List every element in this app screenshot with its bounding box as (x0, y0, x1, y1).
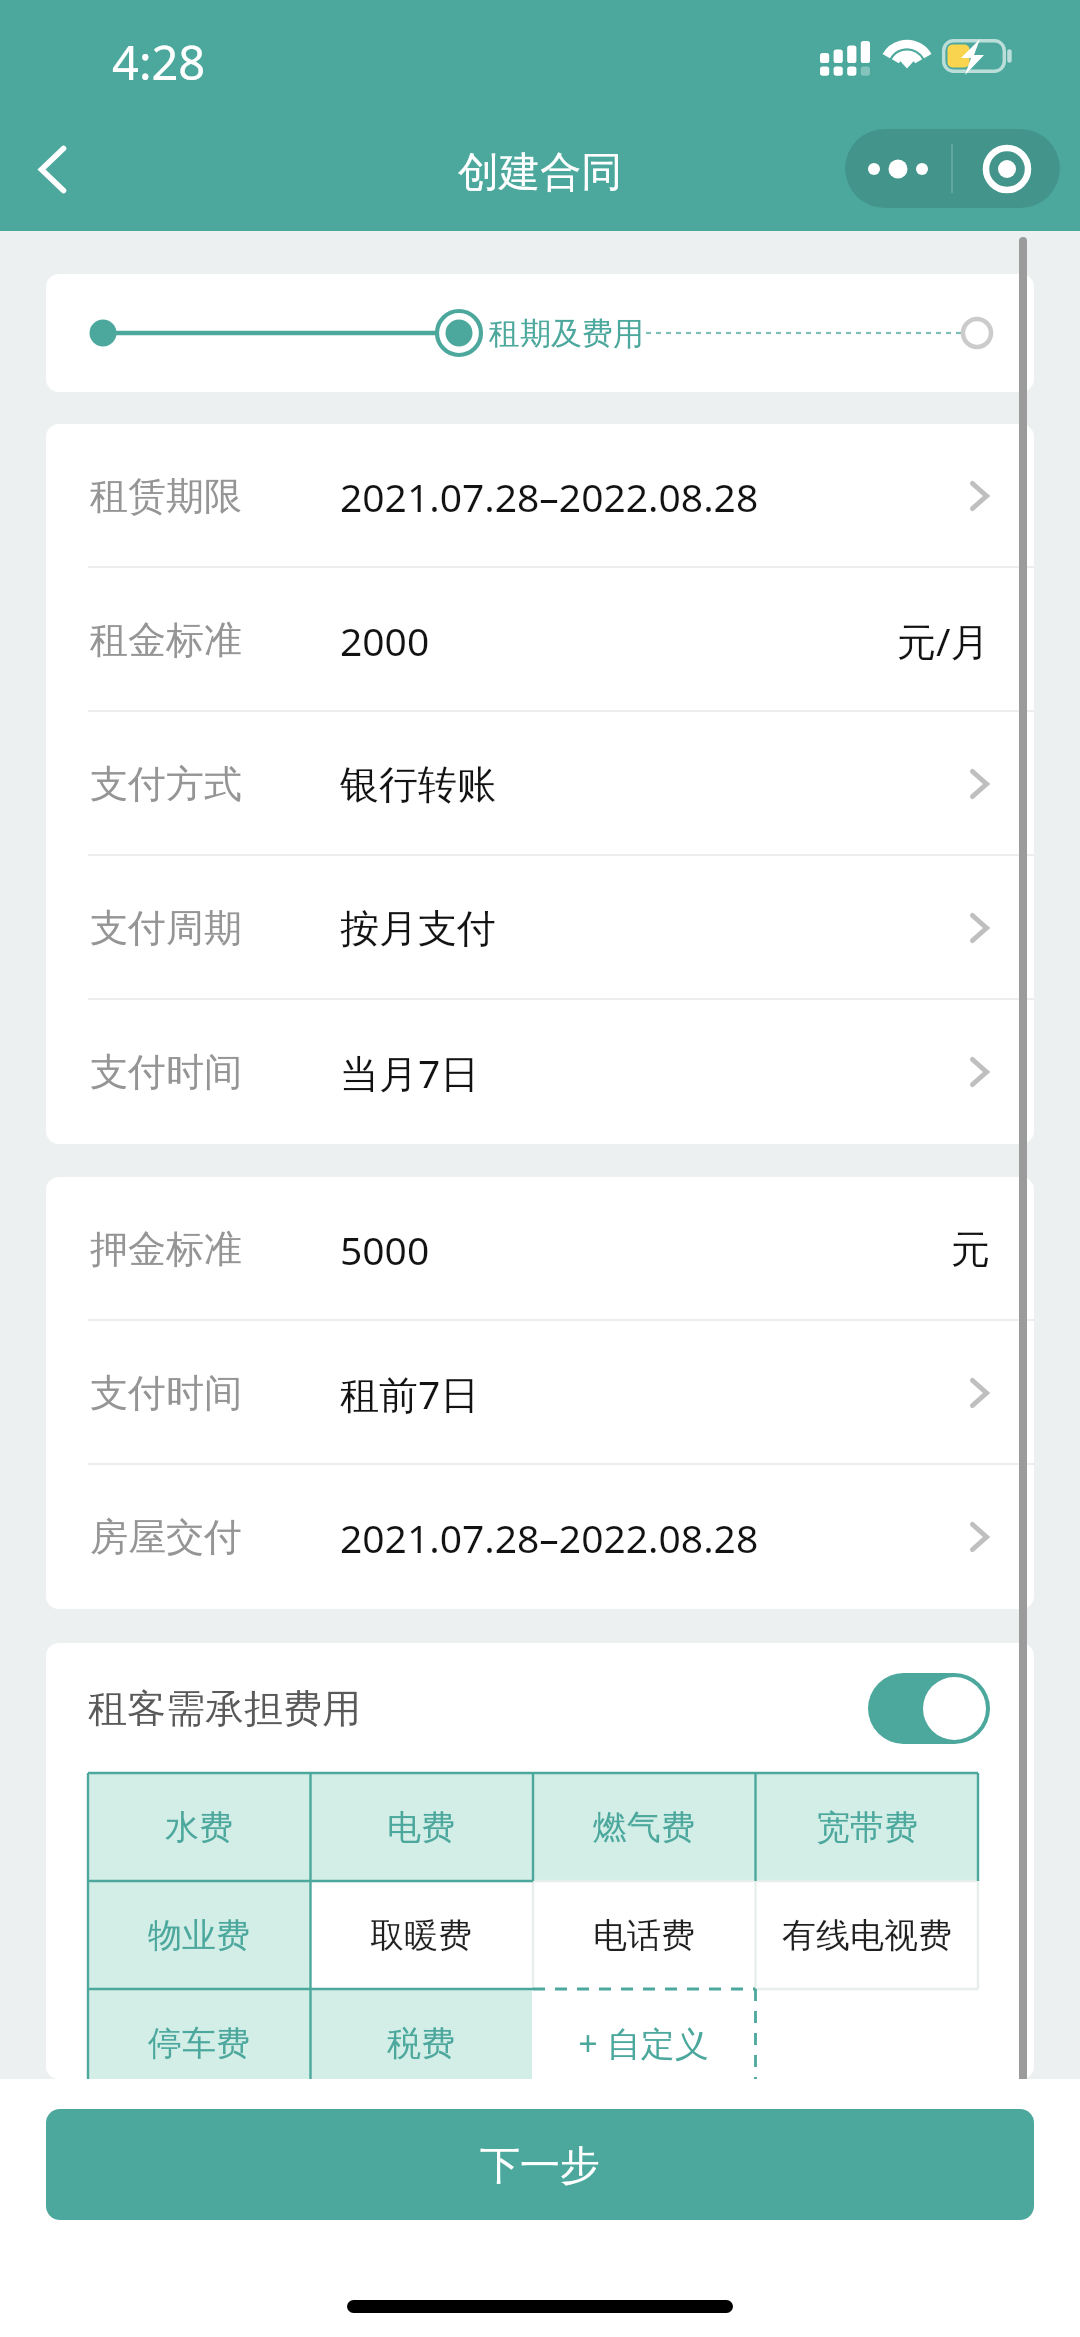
staticText: 电费 (387, 1806, 455, 1849)
staticText: 押金标准 (90, 1225, 340, 1273)
staticText: 当月7日 (340, 1046, 970, 1099)
staticText: 租金标准 (90, 616, 340, 664)
staticText: 4:28 (112, 30, 206, 94)
button[interactable]: 电话费 (532, 1881, 755, 1989)
button[interactable]: + 自定义 (532, 1989, 755, 2079)
staticText: 5000 (340, 1223, 951, 1276)
staticText: 元/月 (897, 614, 990, 667)
button[interactable]: 支付周期 (46, 856, 1034, 1000)
button[interactable]: 有线电视费 (755, 1881, 978, 1989)
button[interactable]: 下一步 (46, 2109, 1034, 2220)
staticText: 燃气费 (593, 1806, 695, 1849)
staticText: 元 (951, 1225, 990, 1274)
button[interactable]: 支付方式 (46, 712, 1034, 856)
button[interactable]: Toggle tenant fees (868, 1673, 990, 1744)
staticText: 租期及费用 (489, 314, 644, 353)
button[interactable]: 税费 (310, 1989, 532, 2079)
staticText: 支付时间 (90, 1048, 340, 1096)
button[interactable]: 押金标准 (46, 1177, 1034, 1321)
staticText: 2021.07.28–2022.08.28 (340, 1511, 970, 1564)
button[interactable]: 电费 (310, 1773, 532, 1881)
staticText: + 自定义 (578, 2020, 709, 2066)
button[interactable]: 支付时间 (46, 1321, 1034, 1465)
staticText: 2021.07.28–2022.08.28 (340, 470, 970, 523)
staticText: 创建合同 (458, 147, 622, 199)
staticText: 支付时间 (90, 1369, 340, 1417)
button[interactable]: 房屋交付 (46, 1465, 1034, 1609)
staticText: 租客需承担费用 (88, 1684, 868, 1733)
staticText: 电话费 (593, 1914, 695, 1957)
button[interactable]: 宽带费 (755, 1773, 978, 1881)
staticText: 房屋交付 (90, 1513, 340, 1561)
button[interactable]: 取暖费 (310, 1881, 532, 1989)
staticText: 银行转账 (340, 760, 970, 809)
staticText: 物业费 (148, 1914, 250, 1957)
staticText: 按月支付 (340, 904, 970, 953)
button[interactable]: More options (845, 129, 951, 208)
button[interactable]: Back (0, 121, 104, 217)
staticText: 税费 (387, 2022, 455, 2065)
button[interactable]: 租期及费用 (46, 274, 1034, 392)
staticText: 有线电视费 (782, 1914, 952, 1957)
staticText: 2000 (340, 614, 897, 667)
button[interactable]: 租金标准 (46, 568, 1034, 712)
button[interactable]: Close mini program (953, 129, 1060, 208)
button[interactable]: 水费 (88, 1773, 310, 1881)
button[interactable]: 停车费 (88, 1989, 310, 2079)
staticText: 下一步 (480, 2140, 600, 2190)
staticText: 支付方式 (90, 760, 340, 808)
button[interactable]: 租赁期限 (46, 424, 1034, 568)
staticText: 租赁期限 (90, 472, 340, 520)
button[interactable]: 支付时间 (46, 1000, 1034, 1144)
staticText: 水费 (165, 1806, 233, 1849)
staticText: 支付周期 (90, 904, 340, 952)
button[interactable] (755, 1989, 978, 2079)
button[interactable]: 燃气费 (532, 1773, 755, 1881)
staticText: 租前7日 (340, 1367, 970, 1420)
staticText: 停车费 (148, 2022, 250, 2065)
staticText: 宽带费 (816, 1806, 918, 1849)
staticText: 取暖费 (370, 1914, 472, 1957)
button[interactable]: 物业费 (88, 1881, 310, 1989)
